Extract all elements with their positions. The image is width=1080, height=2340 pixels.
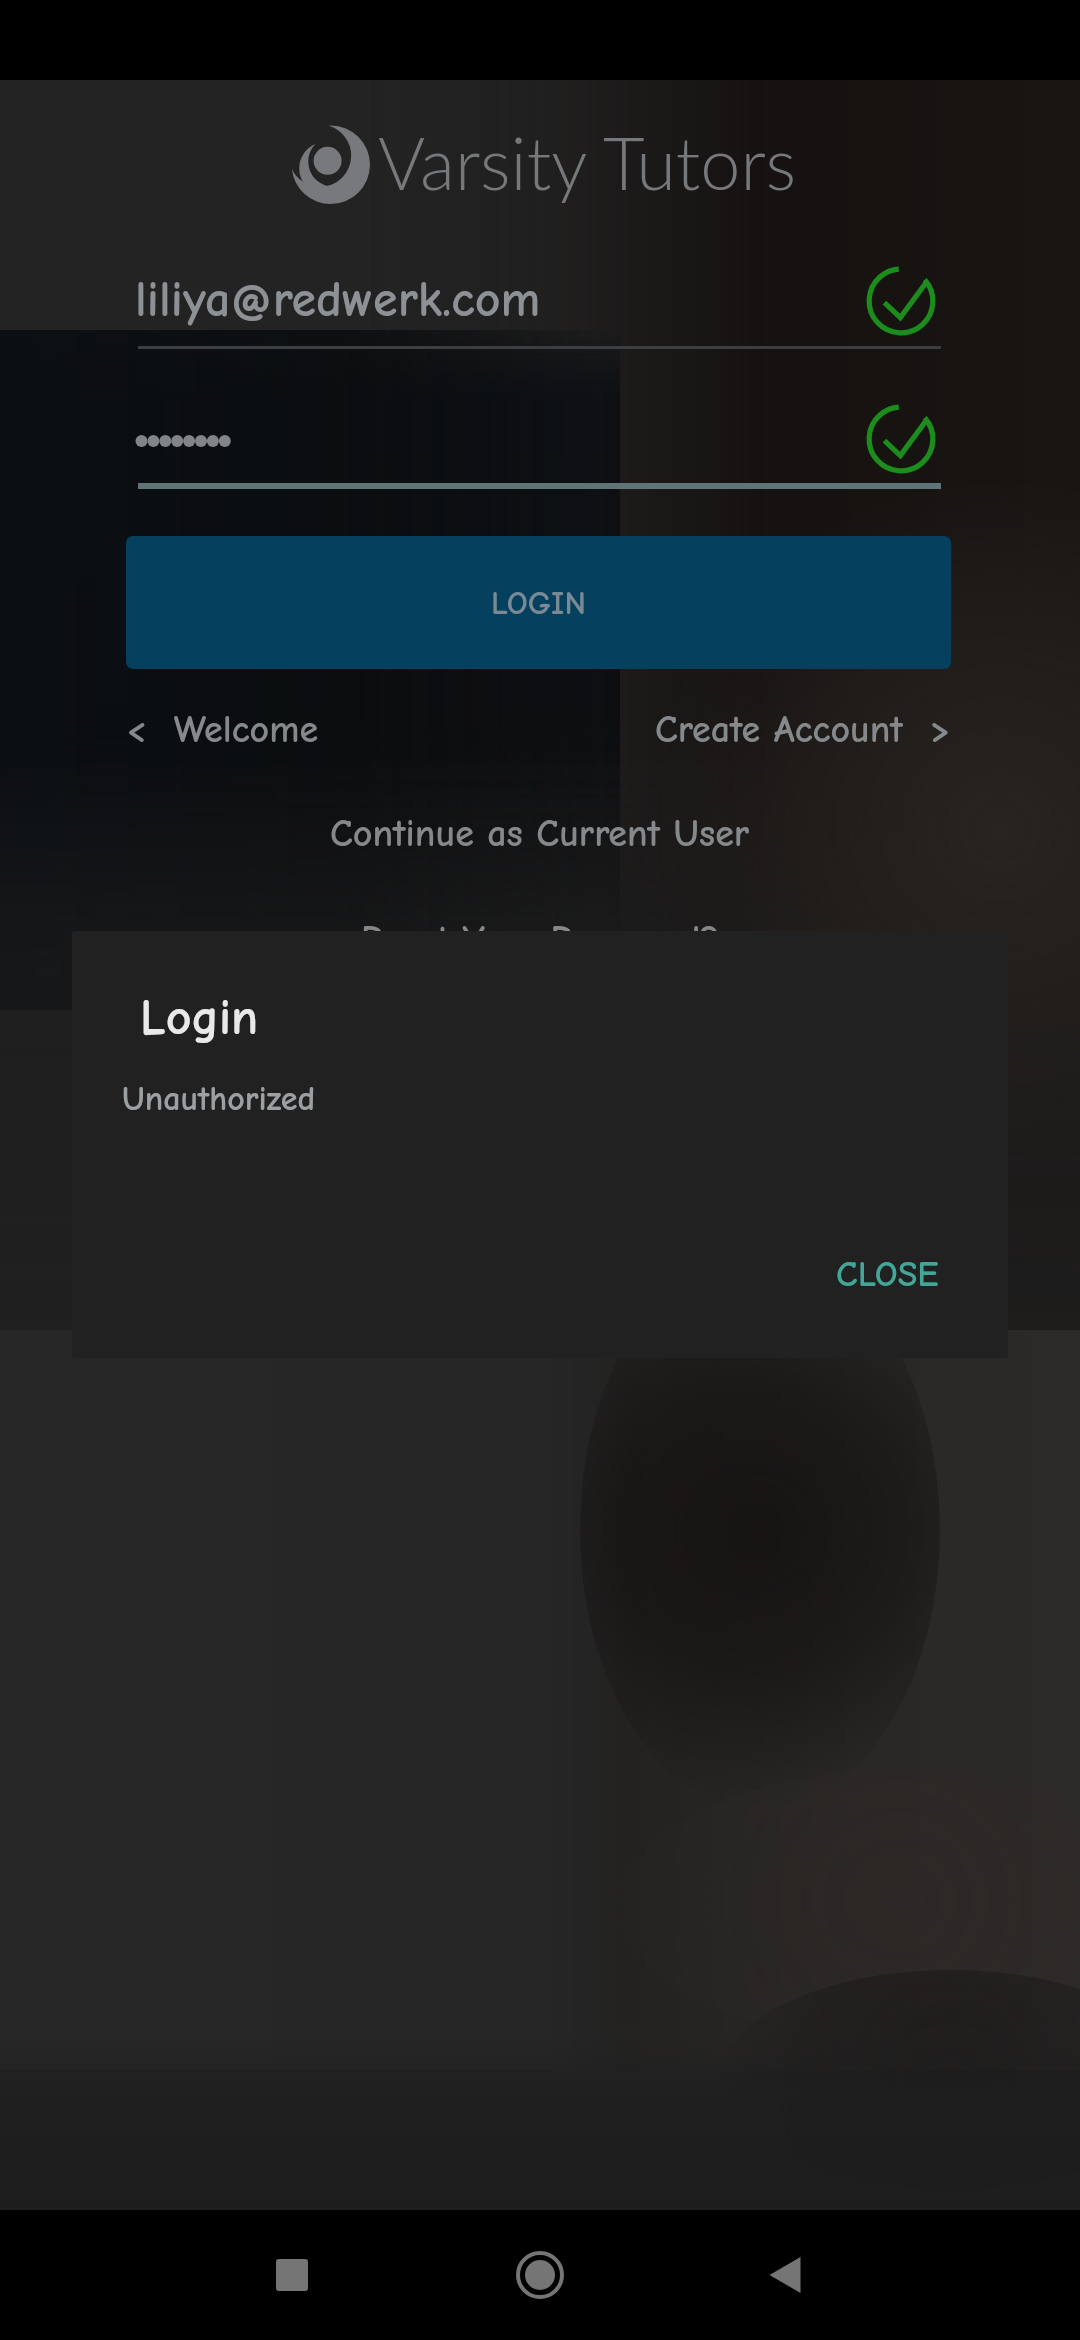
button[interactable]: Continue as Current User [0,798,1080,870]
staticText: < Welcome [126,708,319,752]
staticText: Unauthorized [122,1079,316,1118]
button[interactable]: Recent apps [232,2215,352,2335]
button: Login [72,931,1008,1358]
staticText: liliya@redwerk.com [135,271,541,329]
staticText: Login [140,989,259,1047]
other: E-mail accepted [866,266,936,336]
button[interactable]: CLOSE [812,1219,962,1329]
staticText: Reset Your Password? [361,918,720,962]
staticText: LOGIN [491,584,586,622]
button[interactable]: < Welcome [121,690,324,770]
button[interactable]: Reset Your Password? [0,904,1080,976]
staticText: Create Account > [655,708,951,752]
staticText: Varsity Tutors [378,119,797,205]
staticText: Continue as Current User [330,812,750,856]
button[interactable]: LOGIN [126,536,951,669]
other: Password accepted [866,404,936,474]
button[interactable]: Create Account > [650,690,956,770]
staticText: CLOSE [836,1254,939,1295]
button[interactable]: Home [480,2215,600,2335]
button[interactable]: Back [725,2215,845,2335]
